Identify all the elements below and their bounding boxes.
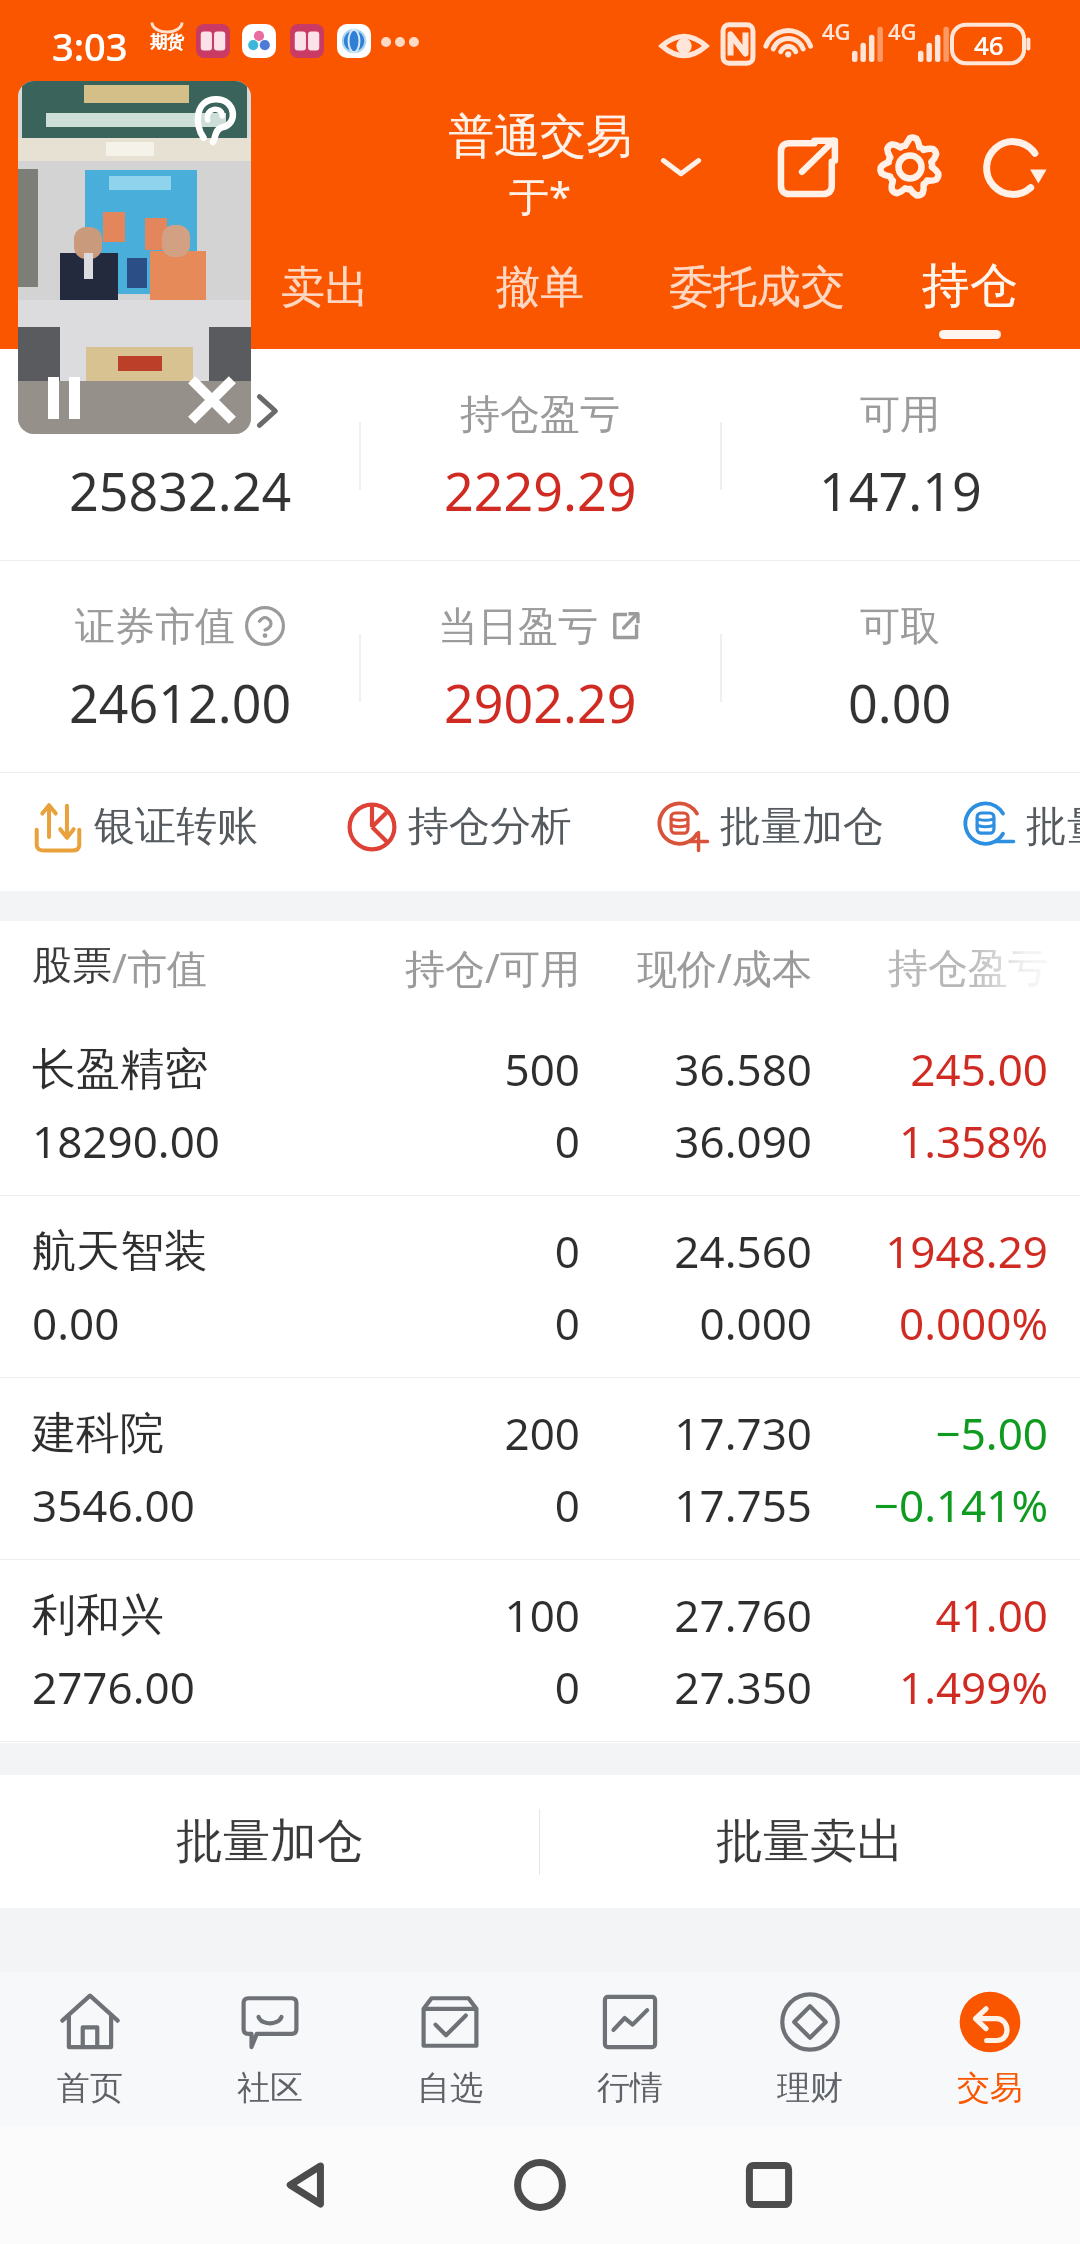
- button[interactable]: 交易: [900, 1972, 1080, 2126]
- staticText: 2229.29: [444, 455, 637, 526]
- button[interactable]: 卖出: [225, 246, 425, 350]
- staticText: 36.580: [580, 1039, 812, 1099]
- staticText: 200: [340, 1403, 580, 1463]
- staticText: 现价/成本: [580, 940, 812, 995]
- staticText: 46: [974, 27, 1004, 62]
- button[interactable]: 最近任务: [724, 2140, 814, 2230]
- staticText: 首页: [57, 2067, 123, 2109]
- button[interactable]: 持仓分析: [344, 799, 572, 855]
- button[interactable]: 银证转账: [30, 799, 258, 855]
- staticText: 245.00: [812, 1039, 1048, 1099]
- staticText: 批量减仓: [1026, 801, 1080, 853]
- staticText: 交易: [957, 2067, 1023, 2109]
- staticText: 3546.00: [32, 1475, 340, 1535]
- button[interactable]: 买入: [10, 246, 210, 350]
- staticText: 航天智装: [32, 1224, 340, 1279]
- staticText: 0: [340, 1293, 580, 1353]
- staticText: 持仓/可用: [340, 940, 580, 995]
- button[interactable]: 理财: [720, 1972, 900, 2126]
- staticText: 批量卖出: [716, 1812, 904, 1871]
- staticText: 0.000: [580, 1293, 812, 1353]
- staticText: 24612.00: [69, 667, 292, 738]
- staticText: 2776.00: [32, 1657, 340, 1717]
- staticText: 批量加仓: [176, 1812, 364, 1871]
- staticText: 0: [340, 1221, 580, 1281]
- staticText: 18290.00: [32, 1111, 340, 1171]
- button[interactable]: 普通交易: [448, 108, 632, 166]
- button[interactable]: 利和兴: [0, 1560, 1080, 1741]
- staticText: 41.00: [812, 1585, 1048, 1645]
- button[interactable]: 批量加仓: [0, 1775, 539, 1908]
- staticText: 期货: [150, 32, 184, 53]
- button[interactable]: 持仓: [870, 246, 1070, 350]
- button[interactable]: 视频直播: [18, 81, 251, 434]
- staticText: 27.350: [580, 1657, 812, 1717]
- button[interactable]: 自选: [360, 1972, 540, 2126]
- staticText: 24.560: [580, 1221, 812, 1281]
- staticText: 500: [340, 1039, 580, 1099]
- button[interactable]: 建科院: [0, 1378, 1080, 1559]
- staticText: 建科院: [32, 1406, 340, 1461]
- staticText: −5.00: [812, 1403, 1048, 1463]
- staticText: 买入: [66, 260, 154, 315]
- staticText: 行情: [597, 2067, 663, 2109]
- staticText: 持仓分析: [408, 801, 572, 853]
- staticText: 27.760: [580, 1585, 812, 1645]
- button[interactable]: 长盈精密: [0, 1014, 1080, 1195]
- staticText: 银证转账: [94, 801, 258, 853]
- button[interactable]: 主页: [495, 2140, 585, 2230]
- staticText: 持仓盈亏: [460, 389, 620, 439]
- staticText: 于*: [509, 168, 572, 223]
- staticText: 0.00: [848, 667, 952, 738]
- button[interactable]: 批量卖出: [540, 1775, 1080, 1908]
- button[interactable]: 返回: [262, 2140, 352, 2230]
- staticText: 长盈精密: [32, 1042, 340, 1097]
- staticText: 普通交易: [448, 108, 632, 166]
- staticText: 4G: [822, 16, 851, 46]
- staticText: 理财: [777, 2067, 843, 2109]
- staticText: /市值: [112, 940, 207, 995]
- staticText: 0.00: [32, 1293, 340, 1353]
- staticText: 0: [340, 1475, 580, 1535]
- staticText: 持仓盈亏: [812, 943, 1048, 993]
- staticText: 卖出: [281, 260, 369, 315]
- staticText: 社区: [237, 2067, 303, 2109]
- staticText: 自选: [417, 2067, 483, 2109]
- staticText: 1.358%: [812, 1111, 1048, 1171]
- staticText: 100: [340, 1585, 580, 1645]
- button[interactable]: 展开账户: [648, 132, 714, 198]
- staticText: 147.19: [819, 455, 982, 526]
- staticText: 当日盈亏: [438, 601, 598, 651]
- staticText: 17.730: [580, 1403, 812, 1463]
- staticText: 批量加仓: [720, 801, 884, 853]
- staticText: 0.000%: [812, 1293, 1048, 1353]
- button[interactable]: 撤单: [440, 246, 640, 350]
- button[interactable]: 刷新: [968, 123, 1058, 213]
- button[interactable]: 设置: [865, 122, 955, 212]
- staticText: 股票: [32, 940, 112, 990]
- staticText: 可取: [860, 601, 940, 651]
- staticText: 总资产: [120, 389, 240, 439]
- staticText: 4G: [888, 16, 917, 46]
- button[interactable]: 首页: [0, 1972, 180, 2126]
- staticText: −0.141%: [812, 1475, 1048, 1535]
- staticText: 0: [340, 1657, 580, 1717]
- staticText: 1.499%: [812, 1657, 1048, 1717]
- staticText: 1948.29: [812, 1221, 1048, 1281]
- button[interactable]: 社区: [180, 1972, 360, 2126]
- button[interactable]: 分享: [762, 123, 852, 213]
- staticText: 0: [340, 1111, 580, 1171]
- button[interactable]: 批量加仓: [656, 799, 884, 855]
- staticText: 25832.24: [69, 455, 292, 526]
- staticText: 撤单: [496, 260, 584, 315]
- button[interactable]: 委托成交: [657, 246, 857, 350]
- staticText: 利和兴: [32, 1588, 340, 1643]
- staticText: 36.090: [580, 1111, 812, 1171]
- staticText: 可用: [860, 389, 940, 439]
- staticText: 持仓: [922, 256, 1018, 316]
- button[interactable]: 航天智装: [0, 1196, 1080, 1377]
- staticText: 2902.29: [444, 667, 637, 738]
- button[interactable]: 批量减仓: [962, 799, 1080, 855]
- button[interactable]: 行情: [540, 1972, 720, 2126]
- staticText: 3:03: [52, 20, 128, 72]
